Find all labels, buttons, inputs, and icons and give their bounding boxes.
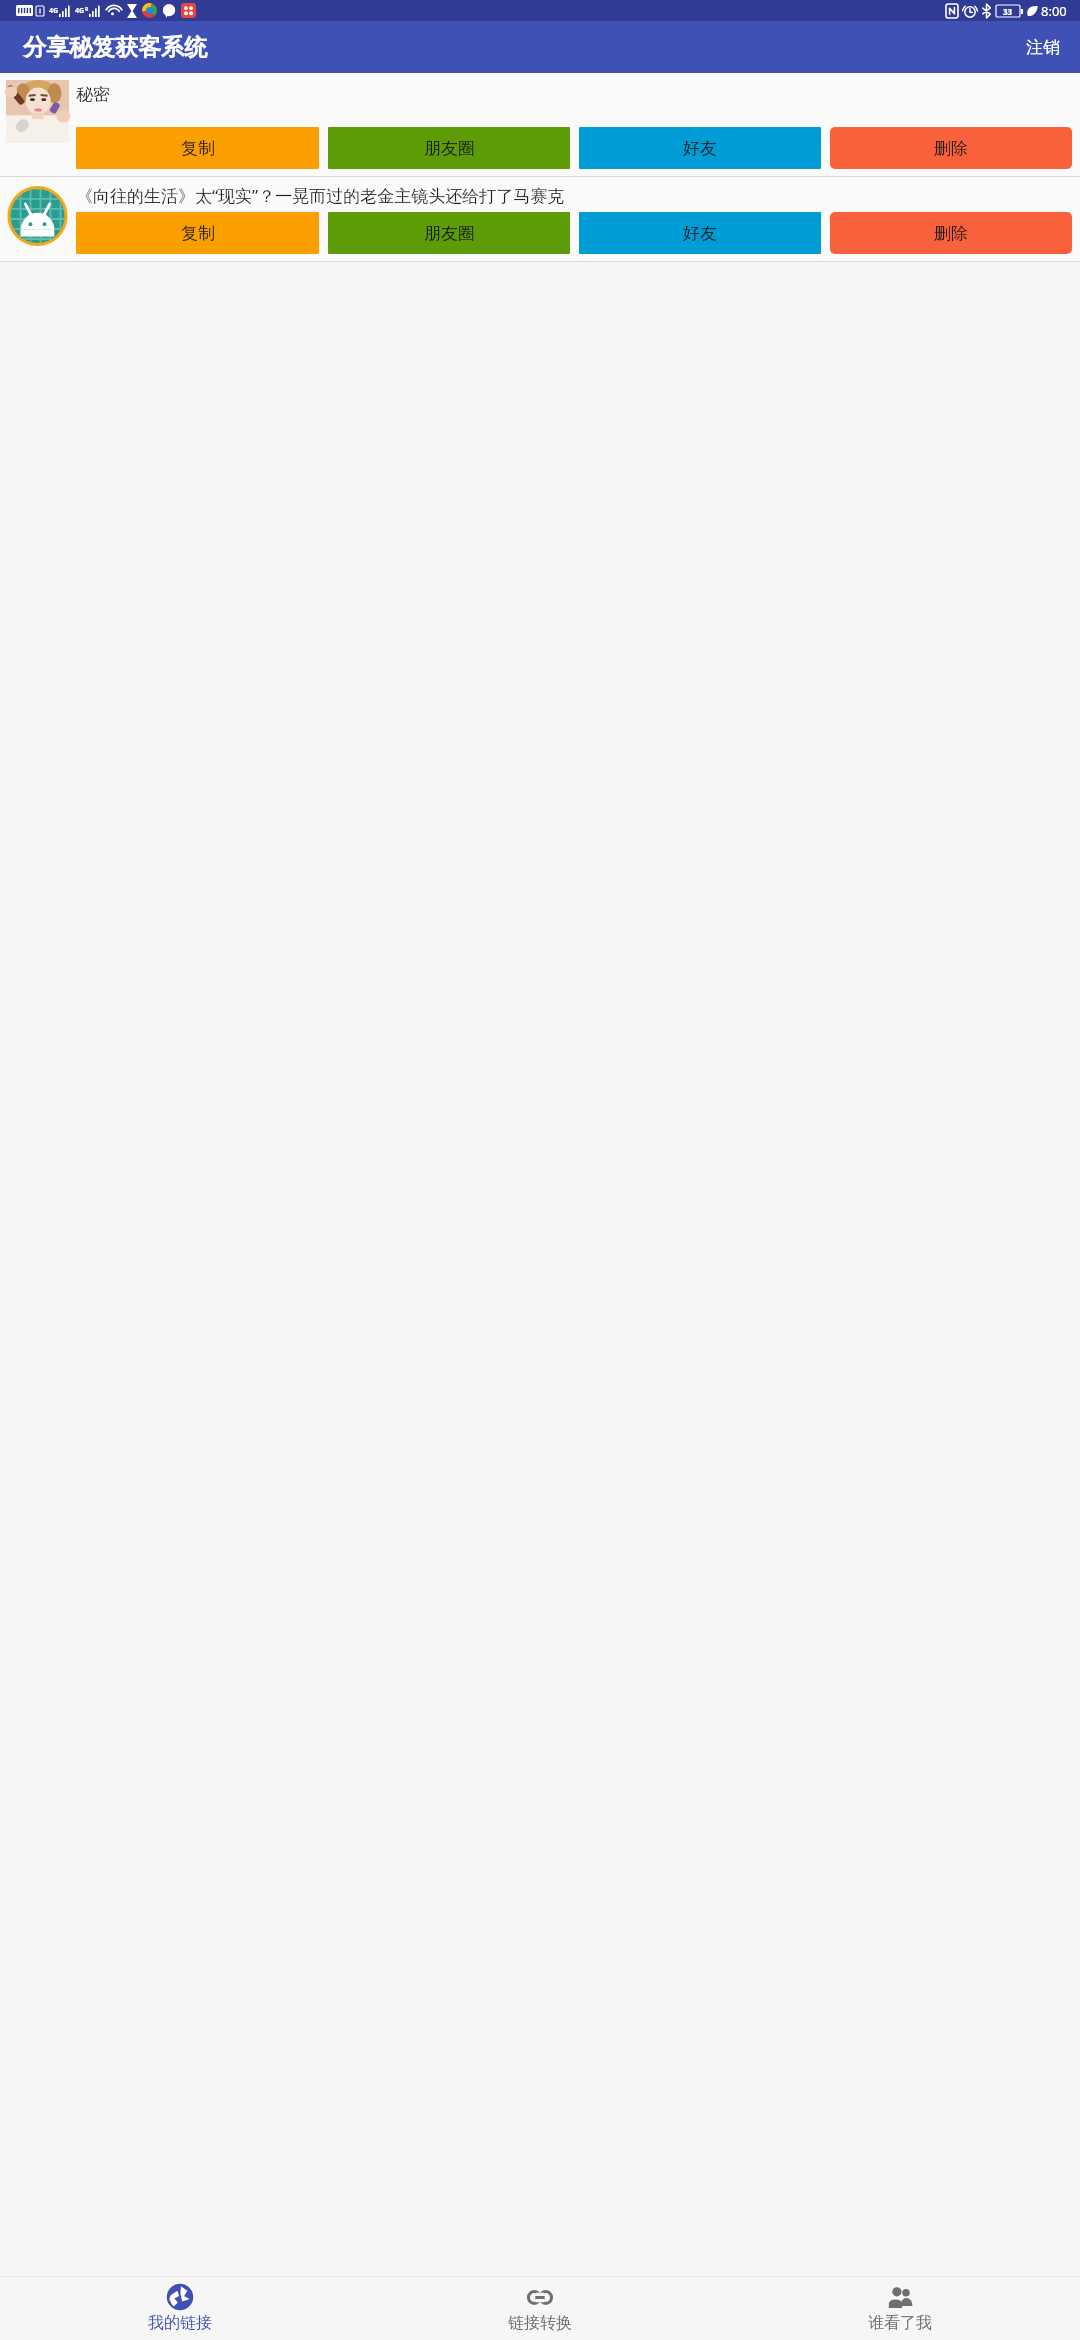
staticText: 朋友圈 (424, 138, 475, 159)
button[interactable]: 复制 (76, 212, 319, 254)
button[interactable]: 朋友圈 (328, 127, 570, 169)
button[interactable]: 朋友圈 (328, 212, 570, 254)
button[interactable]: 好友 (579, 127, 821, 169)
staticText: 好友 (683, 138, 717, 159)
staticText: 分享秘笈获客系统 (23, 33, 207, 62)
staticText: 秘密 (76, 84, 110, 105)
button[interactable]: 《向往的生活》太“现实”？一晃而过的老金主镜头还给打了马赛克 (0, 177, 1080, 261)
staticText: 复制 (181, 223, 215, 244)
staticText: 4G (49, 6, 59, 16)
staticText: 删除 (934, 223, 968, 244)
other: 我的链接 (167, 2284, 193, 2310)
staticText: 好友 (683, 223, 717, 244)
staticText: 谁看了我 (868, 2313, 932, 2333)
button[interactable]: 链接转换 (360, 2277, 720, 2340)
staticText: R (85, 6, 89, 13)
staticText: 《向往的生活》太“现实”？一晃而过的老金主镜头还给打了马赛克 (76, 184, 565, 207)
other: 链接转换 (527, 2290, 553, 2305)
button[interactable]: 谁看了我 (720, 2277, 1080, 2340)
button[interactable]: 秘密 (0, 73, 1080, 176)
button[interactable]: 删除 (830, 127, 1072, 169)
button[interactable]: 好友 (579, 212, 821, 254)
button[interactable]: 复制 (76, 127, 319, 169)
staticText: 复制 (181, 138, 215, 159)
button[interactable]: 我的链接 (0, 2277, 360, 2340)
staticText: 注销 (1026, 37, 1060, 58)
button[interactable]: 删除 (830, 212, 1072, 254)
staticText: 链接转换 (508, 2313, 572, 2333)
other: 谁看了我 (887, 2287, 913, 2308)
staticText: 33 (1003, 6, 1013, 17)
staticText: 4G (75, 6, 85, 16)
staticText: 我的链接 (148, 2313, 212, 2333)
staticText: 删除 (934, 138, 968, 159)
staticText: 8:00 (1041, 2, 1067, 20)
staticText: 朋友圈 (424, 223, 475, 244)
button[interactable]: 注销 (1006, 25, 1080, 70)
